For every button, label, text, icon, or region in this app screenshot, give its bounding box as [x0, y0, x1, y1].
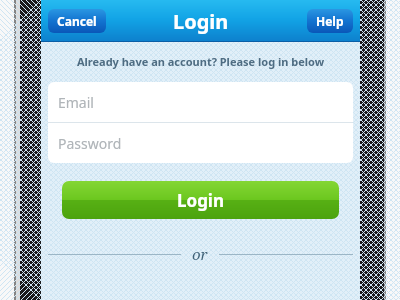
- button[interactable]: Help: [307, 9, 353, 33]
- staticText: Login: [177, 189, 225, 212]
- staticText: Login: [173, 8, 229, 35]
- button[interactable]: Email: [48, 82, 353, 122]
- button[interactable]: Cancel: [48, 9, 106, 33]
- button[interactable]: Password: [48, 123, 353, 163]
- staticText: Password: [58, 134, 122, 153]
- staticText: Email: [58, 93, 94, 112]
- button[interactable]: Login: [62, 181, 339, 219]
- staticText: or: [192, 244, 208, 264]
- staticText: Cancel: [57, 13, 97, 29]
- staticText: Help: [316, 13, 344, 29]
- staticText: Already have an account? Please log in b…: [41, 54, 360, 69]
